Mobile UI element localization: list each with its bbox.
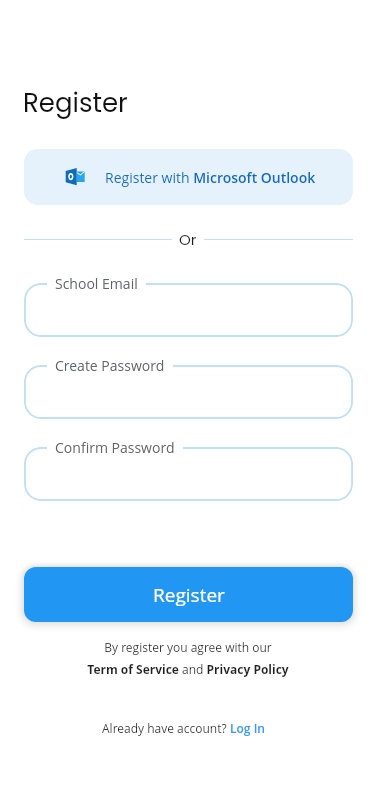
staticText: Term of Service and Privacy Policy <box>87 661 289 677</box>
staticText: Already have account? <box>102 720 230 736</box>
button[interactable] <box>24 447 353 501</box>
staticText: By register you agree with our <box>104 639 272 655</box>
other: Microsoft Outlook <box>65 167 85 186</box>
staticText: Confirm Password <box>55 438 175 457</box>
staticText: Create Password <box>55 356 165 375</box>
staticText: Register <box>153 582 225 608</box>
staticText: Or <box>179 229 197 250</box>
button[interactable]: Microsoft Outlook <box>24 149 353 205</box>
button[interactable]: Log In <box>230 720 265 736</box>
button[interactable]: Register <box>24 567 353 622</box>
staticText: Register with Microsoft Outlook <box>105 168 316 187</box>
staticText: School Email <box>55 274 138 293</box>
staticText: Register <box>23 85 128 121</box>
button[interactable] <box>24 283 353 337</box>
button[interactable] <box>24 365 353 419</box>
